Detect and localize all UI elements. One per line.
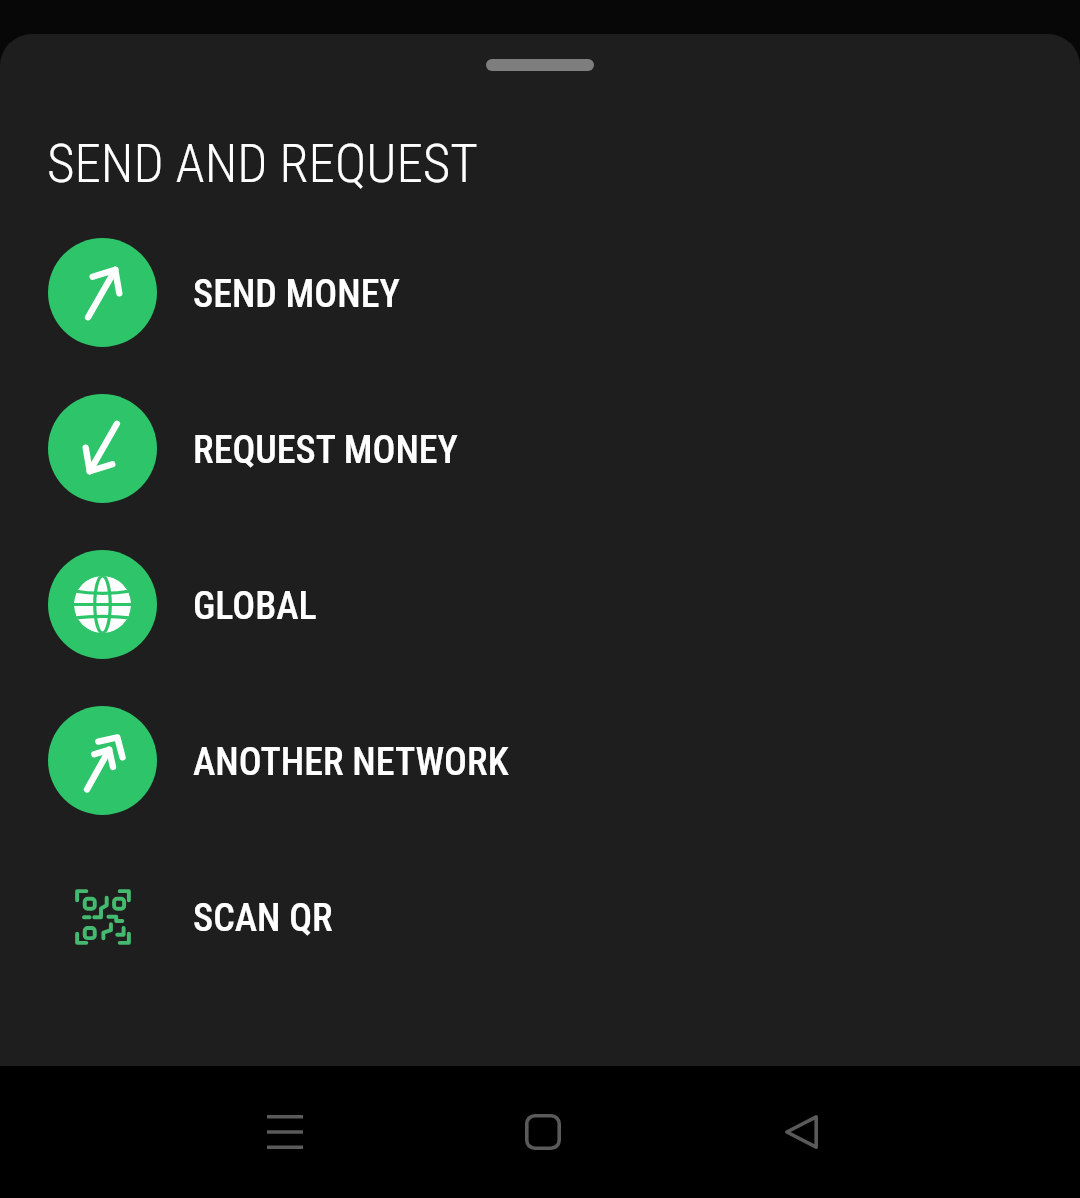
staticText: SCAN QR — [193, 896, 333, 941]
button[interactable]: SCAN QR — [0, 838, 1080, 994]
button[interactable]: Back — [761, 1092, 841, 1172]
button[interactable]: REQUEST MONEY — [0, 370, 1080, 526]
staticText: SEND MONEY — [193, 272, 400, 317]
staticText: SEND AND REQUEST — [47, 133, 478, 195]
staticText: GLOBAL — [193, 584, 317, 629]
button[interactable]: GLOBAL — [0, 526, 1080, 682]
staticText: REQUEST MONEY — [193, 428, 458, 473]
button[interactable]: Home — [503, 1092, 583, 1172]
button[interactable]: Recents — [245, 1092, 325, 1172]
button[interactable]: ANOTHER NETWORK — [0, 682, 1080, 838]
button[interactable]: SEND MONEY — [0, 214, 1080, 370]
staticText: ANOTHER NETWORK — [193, 740, 509, 785]
